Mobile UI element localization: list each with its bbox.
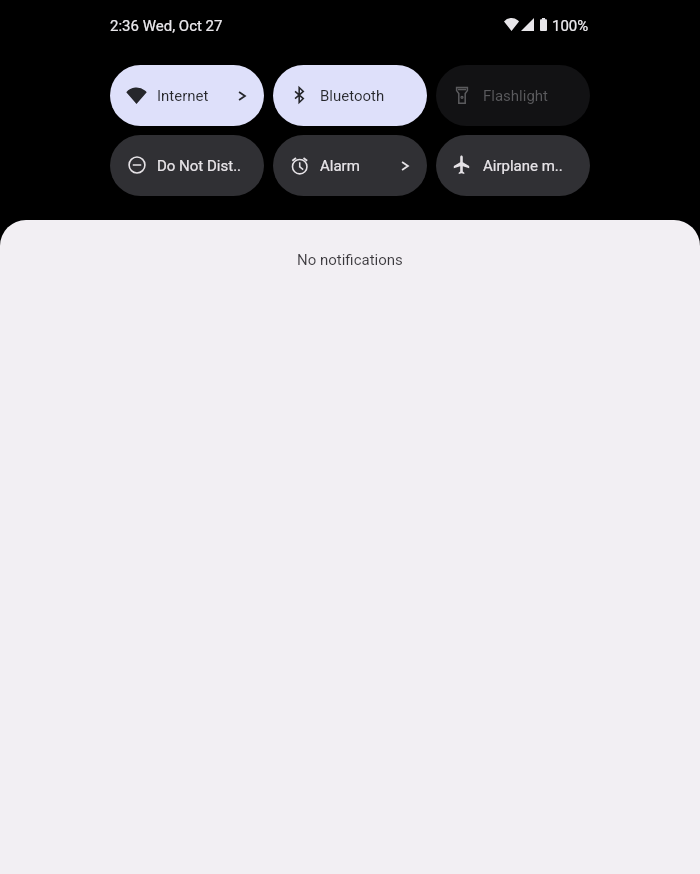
button[interactable]: Bluetooth	[273, 65, 427, 126]
staticText: 2:36 Wed, Oct 27	[110, 17, 223, 35]
staticText: No notifications	[297, 251, 403, 269]
button[interactable]: Do Not Dist..	[110, 135, 264, 196]
staticText: Alarm	[320, 157, 401, 175]
staticText: 100%	[552, 17, 589, 35]
button[interactable]: Flashlight	[436, 65, 590, 126]
button[interactable]: Internet	[110, 65, 264, 126]
staticText: Airplane m..	[483, 157, 572, 175]
button[interactable]: Airplane m..	[436, 135, 590, 196]
button[interactable]: Alarm	[273, 135, 427, 196]
staticText: Do Not Dist..	[157, 157, 246, 175]
staticText: Flashlight	[483, 87, 572, 105]
staticText: Internet	[157, 87, 238, 105]
staticText: Bluetooth	[320, 87, 409, 105]
